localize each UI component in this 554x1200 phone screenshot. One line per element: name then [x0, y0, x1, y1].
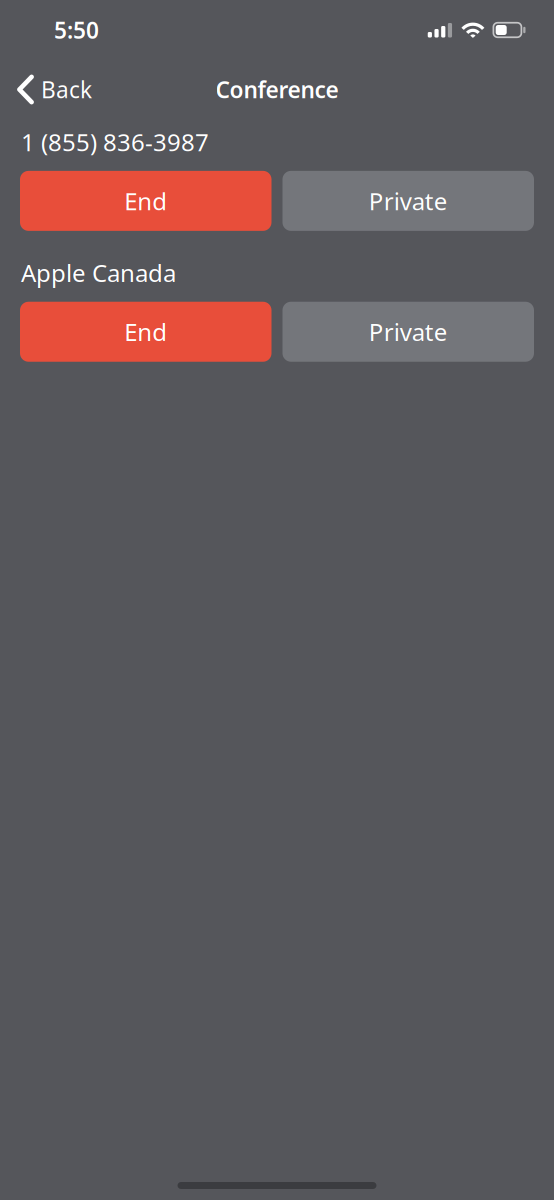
staticText: Back	[41, 74, 92, 104]
staticText: Apple Canada	[21, 257, 176, 289]
button[interactable]: Back	[0, 74, 104, 104]
staticText: Private	[369, 185, 448, 217]
button[interactable]: Private	[282, 302, 534, 362]
staticText: 5:50	[54, 15, 99, 45]
button[interactable]: End	[20, 302, 271, 362]
staticText: Private	[369, 316, 448, 348]
staticText: End	[124, 185, 167, 217]
staticText: 1 (855) 836-3987	[21, 126, 209, 158]
button[interactable]: Private	[282, 171, 534, 231]
staticText: Conference	[215, 74, 338, 104]
staticText: End	[124, 316, 167, 348]
button[interactable]: End	[20, 171, 271, 231]
